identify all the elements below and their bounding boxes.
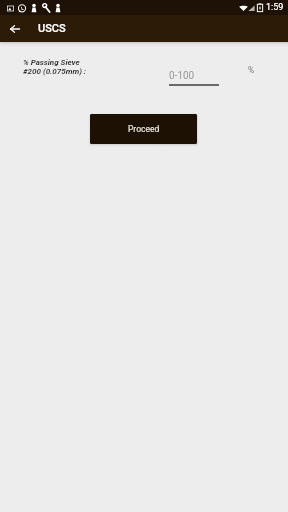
staticText: Proceed — [128, 124, 160, 134]
staticText: % Passing Sieve #200 (0.075mm) : — [23, 58, 87, 76]
staticText: 0-100 — [169, 70, 195, 82]
button[interactable]: Back — [4, 18, 26, 40]
staticText: % — [248, 65, 255, 75]
button[interactable]: 0-100 — [169, 66, 219, 86]
staticText: 1:59 — [266, 2, 284, 13]
staticText: USCS — [38, 22, 66, 35]
button[interactable]: Proceed — [90, 114, 197, 144]
